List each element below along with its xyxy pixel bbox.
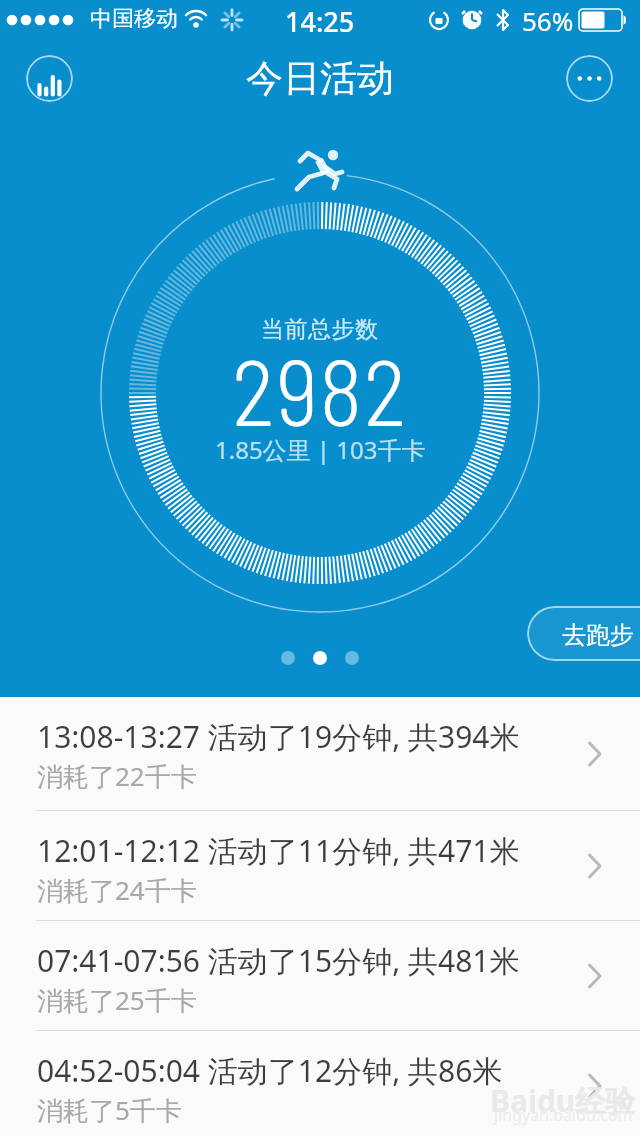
staticText: 消耗了25千卡 bbox=[37, 982, 197, 1018]
button[interactable] bbox=[26, 55, 73, 102]
staticText: 12:01-12:12 活动了11分钟, 共471米 bbox=[37, 830, 520, 871]
staticText: 当前总步数 bbox=[261, 315, 379, 344]
staticText: 14:25 bbox=[285, 3, 355, 40]
button[interactable]: 07:41-07:56 活动了15分钟, 共481米 bbox=[0, 921, 640, 1030]
staticText: 13:08-13:27 活动了19分钟, 共394米 bbox=[37, 716, 520, 757]
button[interactable]: 04:52-05:04 活动了12分钟, 共86米 bbox=[0, 1031, 640, 1136]
staticText: 04:52-05:04 活动了12分钟, 共86米 bbox=[37, 1050, 503, 1091]
button[interactable] bbox=[566, 55, 613, 102]
button[interactable]: 13:08-13:27 活动了19分钟, 共394米 bbox=[0, 697, 640, 810]
staticText: 消耗了5千卡 bbox=[37, 1092, 182, 1128]
staticText: jingyan.baidu.com bbox=[494, 1104, 633, 1126]
staticText: 2982 bbox=[232, 334, 408, 444]
button[interactable]: 12:01-12:12 活动了11分钟, 共471米 bbox=[0, 811, 640, 920]
staticText: 去跑步 bbox=[562, 620, 634, 650]
staticText: 56% bbox=[522, 3, 574, 38]
button[interactable]: 去跑步 bbox=[527, 606, 640, 661]
staticText: 中国移动 bbox=[90, 5, 178, 33]
staticText: 消耗了24千卡 bbox=[37, 872, 197, 908]
staticText: Baidu经验 bbox=[490, 1080, 636, 1121]
staticText: 消耗了22千卡 bbox=[37, 758, 197, 794]
staticText: 1.85公里 | 103千卡 bbox=[215, 433, 426, 466]
staticText: 07:41-07:56 活动了15分钟, 共481米 bbox=[37, 940, 520, 981]
staticText: 今日活动 bbox=[246, 55, 394, 102]
